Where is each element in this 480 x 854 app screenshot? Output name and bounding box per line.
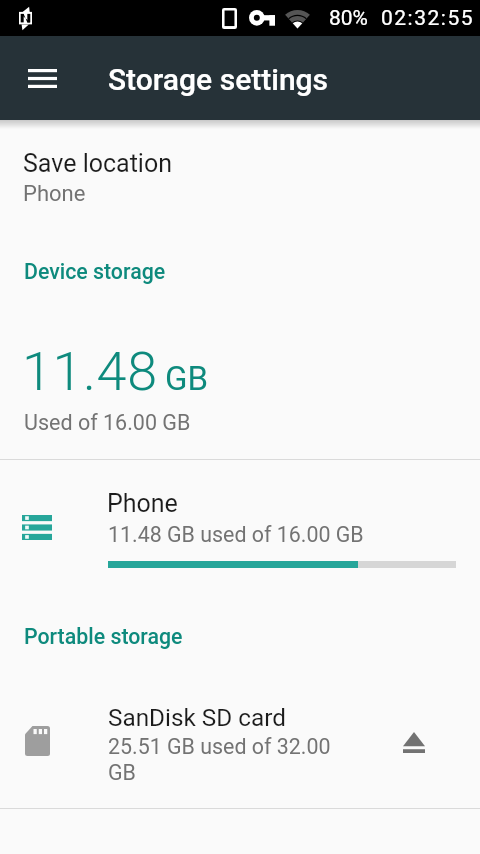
staticText: GB [165, 359, 209, 398]
button[interactable]: Open navigation menu [14, 50, 70, 106]
staticText: Used of 16.00 GB [24, 410, 191, 435]
staticText: Device storage [24, 259, 166, 284]
staticText: Phone [107, 489, 178, 518]
staticText: 25.51 GB used of 32.00 GB [108, 734, 336, 785]
staticText: Storage settings [108, 62, 329, 97]
button[interactable]: SanDisk SD card [0, 688, 480, 808]
staticText: Save location [23, 149, 173, 178]
button[interactable]: Save location [0, 128, 480, 216]
staticText: SanDisk SD card [108, 703, 286, 731]
staticText: Portable storage [24, 624, 183, 649]
staticText: 11.48 [22, 340, 158, 403]
staticText: 80% [329, 6, 368, 31]
staticText: Phone [23, 181, 86, 207]
staticText: 11.48 GB used of 16.00 GB [108, 522, 364, 547]
button[interactable]: Eject SD card [382, 710, 446, 774]
button[interactable]: Phone [0, 460, 480, 590]
staticText: 02:32:55 [381, 6, 474, 31]
